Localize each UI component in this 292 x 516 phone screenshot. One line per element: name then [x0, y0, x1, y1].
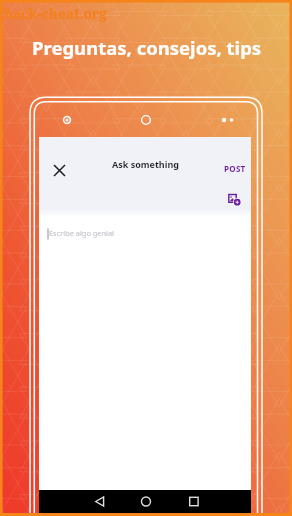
staticText: POST: [224, 163, 246, 174]
button[interactable]: Escribe algo genial: [39, 217, 251, 243]
button[interactable]: POST: [218, 160, 252, 177]
button[interactable]: Add photo: [223, 188, 245, 210]
staticText: Escribe algo genial: [49, 228, 115, 238]
button[interactable]: Close: [47, 158, 71, 182]
staticText: Preguntas, consejos, tips: [32, 35, 262, 60]
staticText: hack-cheat.org: [4, 4, 107, 23]
staticText: Ask something: [112, 158, 179, 170]
